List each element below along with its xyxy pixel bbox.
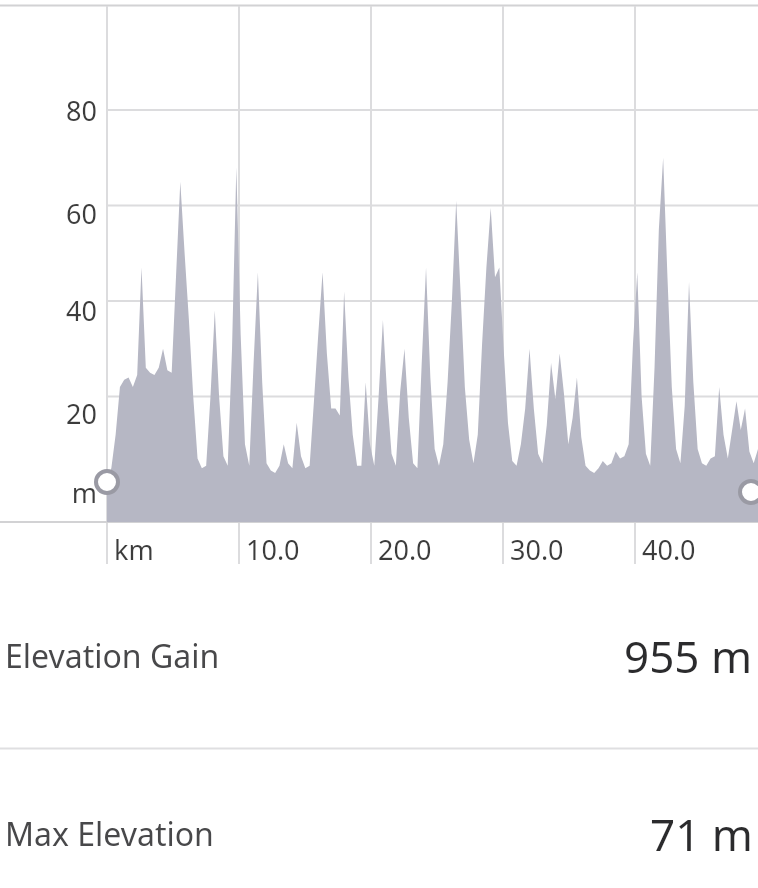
staticText: 20 (66, 395, 97, 431)
staticText: 40 (66, 292, 97, 328)
staticText: m (71, 474, 97, 510)
staticText: km (114, 531, 154, 568)
staticText: 80 (66, 92, 97, 128)
staticText: 955 m (624, 626, 753, 686)
staticText: Elevation Gain (5, 634, 220, 678)
button[interactable]: Max Elevation (0, 790, 758, 878)
button[interactable]: Elevation Gain (0, 612, 758, 700)
staticText: Max Elevation (5, 812, 214, 856)
staticText: 20.0 (378, 531, 432, 568)
staticText: 10.0 (246, 531, 300, 568)
staticText: 40.0 (642, 531, 696, 568)
staticText: 60 (66, 195, 97, 231)
staticText: 71 m (650, 804, 753, 864)
staticText: 30.0 (510, 531, 564, 568)
